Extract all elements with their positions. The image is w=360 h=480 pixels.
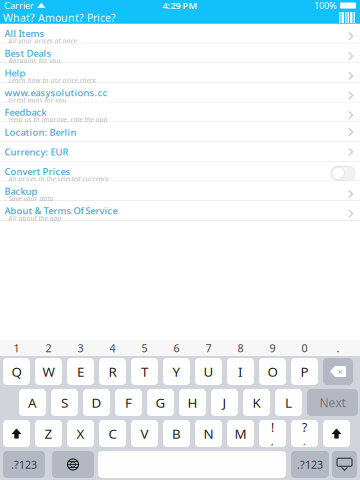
staticText: Best Deals [4,47,51,59]
staticText: 7 [205,341,211,355]
staticText: Z [44,425,52,442]
staticText: Q [11,363,21,380]
staticText: Location: Berlin [4,126,76,138]
button[interactable]: Y [163,358,190,385]
staticText: 100% [314,0,337,12]
button[interactable]: L [275,389,302,416]
staticText: O [267,363,277,380]
button[interactable]: V [131,420,158,447]
button[interactable]: Help [0,63,360,83]
staticText: J [222,394,226,411]
button[interactable]: D [83,389,110,416]
staticText: Backup [4,185,37,197]
staticText: Y [172,363,180,380]
button[interactable]: S [51,389,78,416]
staticText: R [108,363,116,380]
staticText: × [337,365,342,378]
button[interactable] [332,451,357,478]
staticText: 8 [237,341,243,355]
button[interactable]: N [195,420,222,447]
staticText: Great apps for you [8,96,66,104]
staticText: G [155,394,165,411]
button[interactable]: Location: Berlin [0,122,360,142]
button[interactable]: All Items [0,24,360,44]
button[interactable]: E [67,358,94,385]
staticText: A [28,394,37,411]
staticText: Convert Prices [4,165,70,178]
staticText: About & Terms Of Service [4,205,117,217]
staticText: B [172,425,181,442]
staticText: Help us to improve, rate the app [8,115,107,124]
staticText: What? Amount? Price? [3,10,116,25]
button[interactable]: W [35,358,62,385]
button[interactable] [52,451,94,478]
staticText: 4:29 PM [162,0,197,12]
button[interactable]: F [115,389,142,416]
staticText: , [271,435,274,448]
button[interactable]: A [19,389,46,416]
staticText: All prices in the selected currency [8,174,108,183]
staticText: Bargains for you [8,56,60,65]
staticText: Next [319,394,345,410]
staticText: T [141,363,148,380]
staticText: 1 [13,341,19,355]
button[interactable]: I [227,358,254,385]
button[interactable]: H [179,389,206,416]
staticText: 3 [77,341,83,355]
button[interactable]: J [211,389,238,416]
staticText: Carrier [4,0,34,12]
button[interactable]: G [147,389,174,416]
staticText: H [187,394,197,411]
staticText: X [76,425,84,442]
staticText: ? [302,419,307,435]
button[interactable] [323,420,350,447]
button[interactable]: Best Deals [0,44,360,63]
button[interactable]: Next [307,389,358,416]
button[interactable]: .?123 [291,451,329,478]
staticText: N [203,425,213,442]
button[interactable]: ! [259,420,286,447]
staticText: M [234,425,246,442]
staticText: P [300,363,308,380]
button[interactable]: O [259,358,286,385]
button[interactable]: Backup [0,182,360,201]
button[interactable]: P [291,358,318,385]
button[interactable]: × [323,358,353,385]
button[interactable]: K [243,389,270,416]
button[interactable] [3,420,30,447]
staticText: .?123 [11,457,37,472]
staticText: U [203,363,213,380]
staticText: .?123 [297,457,323,472]
button[interactable]: T [131,358,158,385]
staticText: Currency: EUR [4,146,68,158]
staticText: . [303,435,306,448]
button[interactable]: Scan barcode [336,11,358,24]
staticText: Learn how to use price check [8,76,95,85]
button[interactable]: .?123 [3,451,45,478]
staticText: All your prices at once [8,36,76,45]
button[interactable]: B [163,420,190,447]
button[interactable]: Z [35,420,62,447]
staticText: www.easysolutions.cc [4,86,107,99]
button[interactable]: Feedback [0,103,360,122]
button[interactable]: Currency: EUR [0,142,360,162]
staticText: Feedback [4,106,46,118]
button[interactable]: www.easysolutions.cc [0,83,360,103]
staticText: 5 [141,341,147,355]
button[interactable]: C [99,420,126,447]
button[interactable]: M [227,420,254,447]
staticText: 6 [173,341,179,355]
button[interactable]: Convert Prices [0,162,360,182]
staticText: E [77,363,84,380]
button[interactable]: About & Terms Of Service [0,201,360,221]
staticText: Help [4,67,25,79]
staticText: I [238,363,243,380]
button[interactable]: X [67,420,94,447]
staticText: All about the app [8,214,61,223]
staticText: Save your data [8,194,53,203]
button[interactable]: ? [291,420,318,447]
button[interactable]: Q [3,358,30,385]
button[interactable]: R [99,358,126,385]
button[interactable]: U [195,358,222,385]
